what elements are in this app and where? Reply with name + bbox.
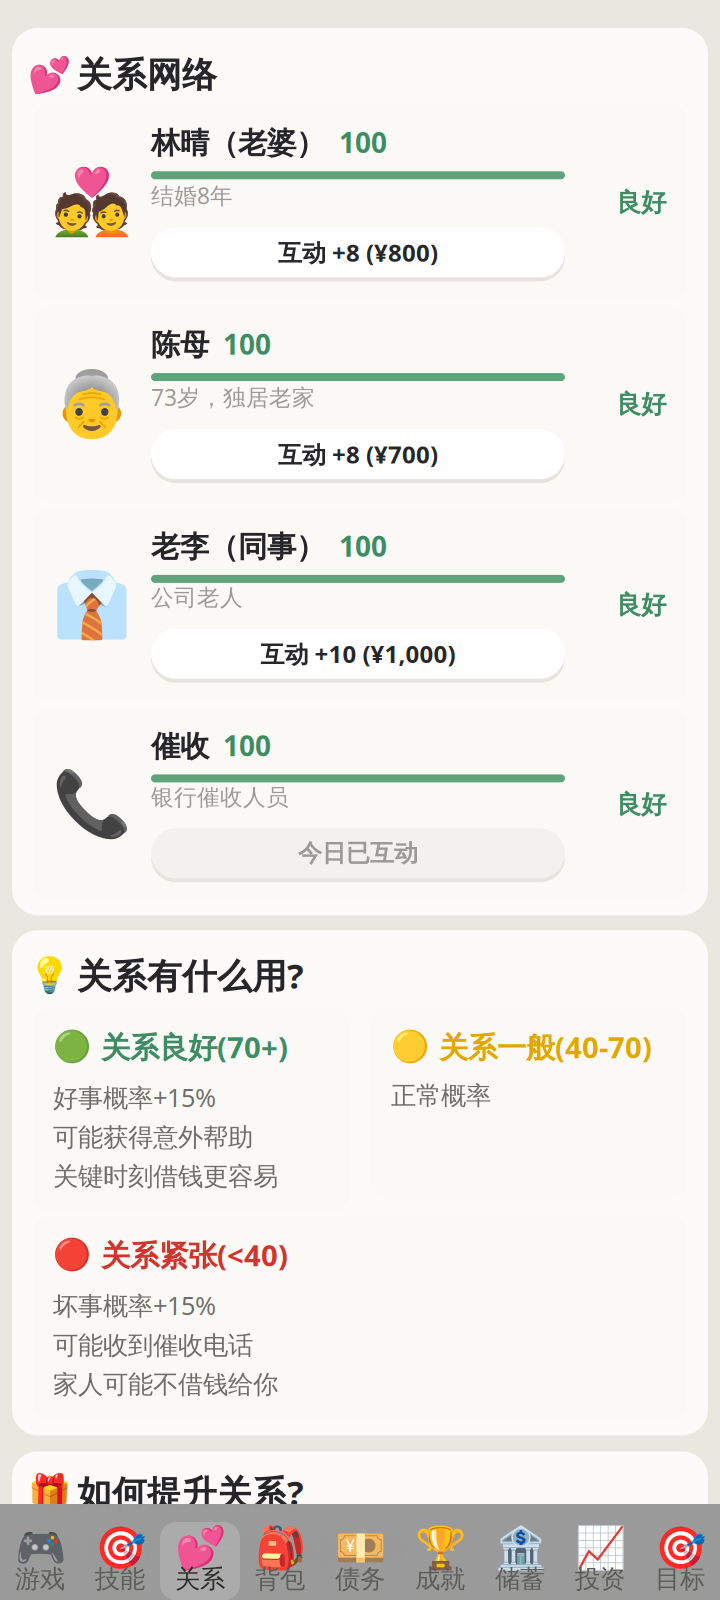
staticText: 关系良好(70+) [101,1027,288,1066]
staticText: 🏦 [494,1524,545,1572]
button[interactable]: 🎯 [640,1522,720,1600]
staticText: 好事概率+15% [53,1080,216,1114]
staticText: 技能 [95,1563,145,1594]
button[interactable]: 📈 [560,1522,640,1600]
staticText: 100 [223,727,271,764]
staticText: 🟢 [53,1029,91,1064]
staticText: 📈 [574,1524,625,1572]
staticText: 投资 [575,1563,625,1594]
staticText: 👔 [52,568,132,641]
staticText: 坏事概率+15% [53,1288,216,1322]
staticText: 💕 [174,1524,225,1572]
staticText: 关键时刻借钱更容易 [53,1161,278,1192]
staticText: 💕 [27,55,70,95]
staticText: 银行催收人员 [151,783,289,811]
staticText: 关系网络 [77,54,217,97]
staticText: 73岁，独居老家 [151,382,315,412]
staticText: 如何提升关系? [77,1469,304,1515]
staticText: 成就 [415,1563,465,1594]
staticText: 🟡 [391,1029,429,1064]
staticText: 今日已互动 [298,838,418,868]
button[interactable]: 🎯 [80,1522,160,1600]
staticText: 👵 [52,368,132,441]
staticText: 关系 [175,1563,225,1594]
staticText: 目标 [655,1563,705,1594]
staticText: 互动 +8 (¥700) [278,438,438,470]
staticText: 📞 [52,768,132,841]
staticText: 🎒 [254,1524,305,1572]
staticText: 🎮 [14,1524,65,1572]
staticText: 良好 [616,589,666,620]
staticText: 公司老人 [151,584,243,612]
staticText: 背包 [255,1563,305,1594]
staticText: 债务 [335,1563,385,1594]
button[interactable]: 💴 [320,1522,400,1600]
button[interactable]: 💕 [160,1522,240,1600]
button[interactable]: 互动 +10 (¥1,000) [151,629,565,683]
staticText: 储蓄 [495,1563,545,1594]
staticText: 良好 [616,389,666,420]
button[interactable]: 今日已互动 [151,828,565,882]
button[interactable]: 🎒 [240,1522,320,1600]
staticText: 良好 [616,187,666,218]
button[interactable]: 互动 +8 (¥800) [151,227,565,281]
staticText: 催收 [151,728,209,764]
button[interactable]: 🏦 [480,1522,560,1600]
staticText: 🎯 [654,1524,705,1572]
staticText: 可能获得意外帮助 [53,1122,253,1153]
staticText: 陈母 [151,327,209,363]
staticText: 100 [339,527,387,564]
button[interactable]: 互动 +8 (¥700) [151,429,565,483]
staticText: 每天主动互动，关系值会稳步提升 [33,1535,408,1566]
staticText: 关系一般(40-70) [439,1027,652,1066]
staticText: 游戏 [15,1563,65,1594]
staticText: 结婚8年 [151,180,233,210]
staticText: 🎯 [94,1524,145,1572]
staticText: 💡 [27,955,70,995]
staticText: 关系有什么用? [77,952,304,998]
staticText: 互动 +10 (¥1,000) [260,638,455,670]
staticText: 老李（同事） [151,529,325,565]
staticText: 家人可能不借钱给你 [53,1369,278,1400]
staticText: 林晴（老婆） [151,125,325,161]
staticText: 🏆 [414,1524,465,1572]
staticText: 100 [223,325,271,363]
staticText: 关系紧张(<40) [101,1235,288,1274]
staticText: 良好 [616,789,666,820]
staticText: 🎁 [27,1472,70,1512]
staticText: 100 [339,124,387,161]
staticText: 可能收到催收电话 [53,1330,253,1361]
staticText: 正常概率 [391,1080,491,1111]
staticText: 💑 [52,166,132,239]
staticText: 🔴 [53,1237,91,1272]
button[interactable]: 🏆 [400,1522,480,1600]
staticText: 💴 [334,1524,385,1572]
staticText: 互动 +8 (¥800) [278,236,438,268]
button[interactable]: 🎮 [0,1522,80,1600]
